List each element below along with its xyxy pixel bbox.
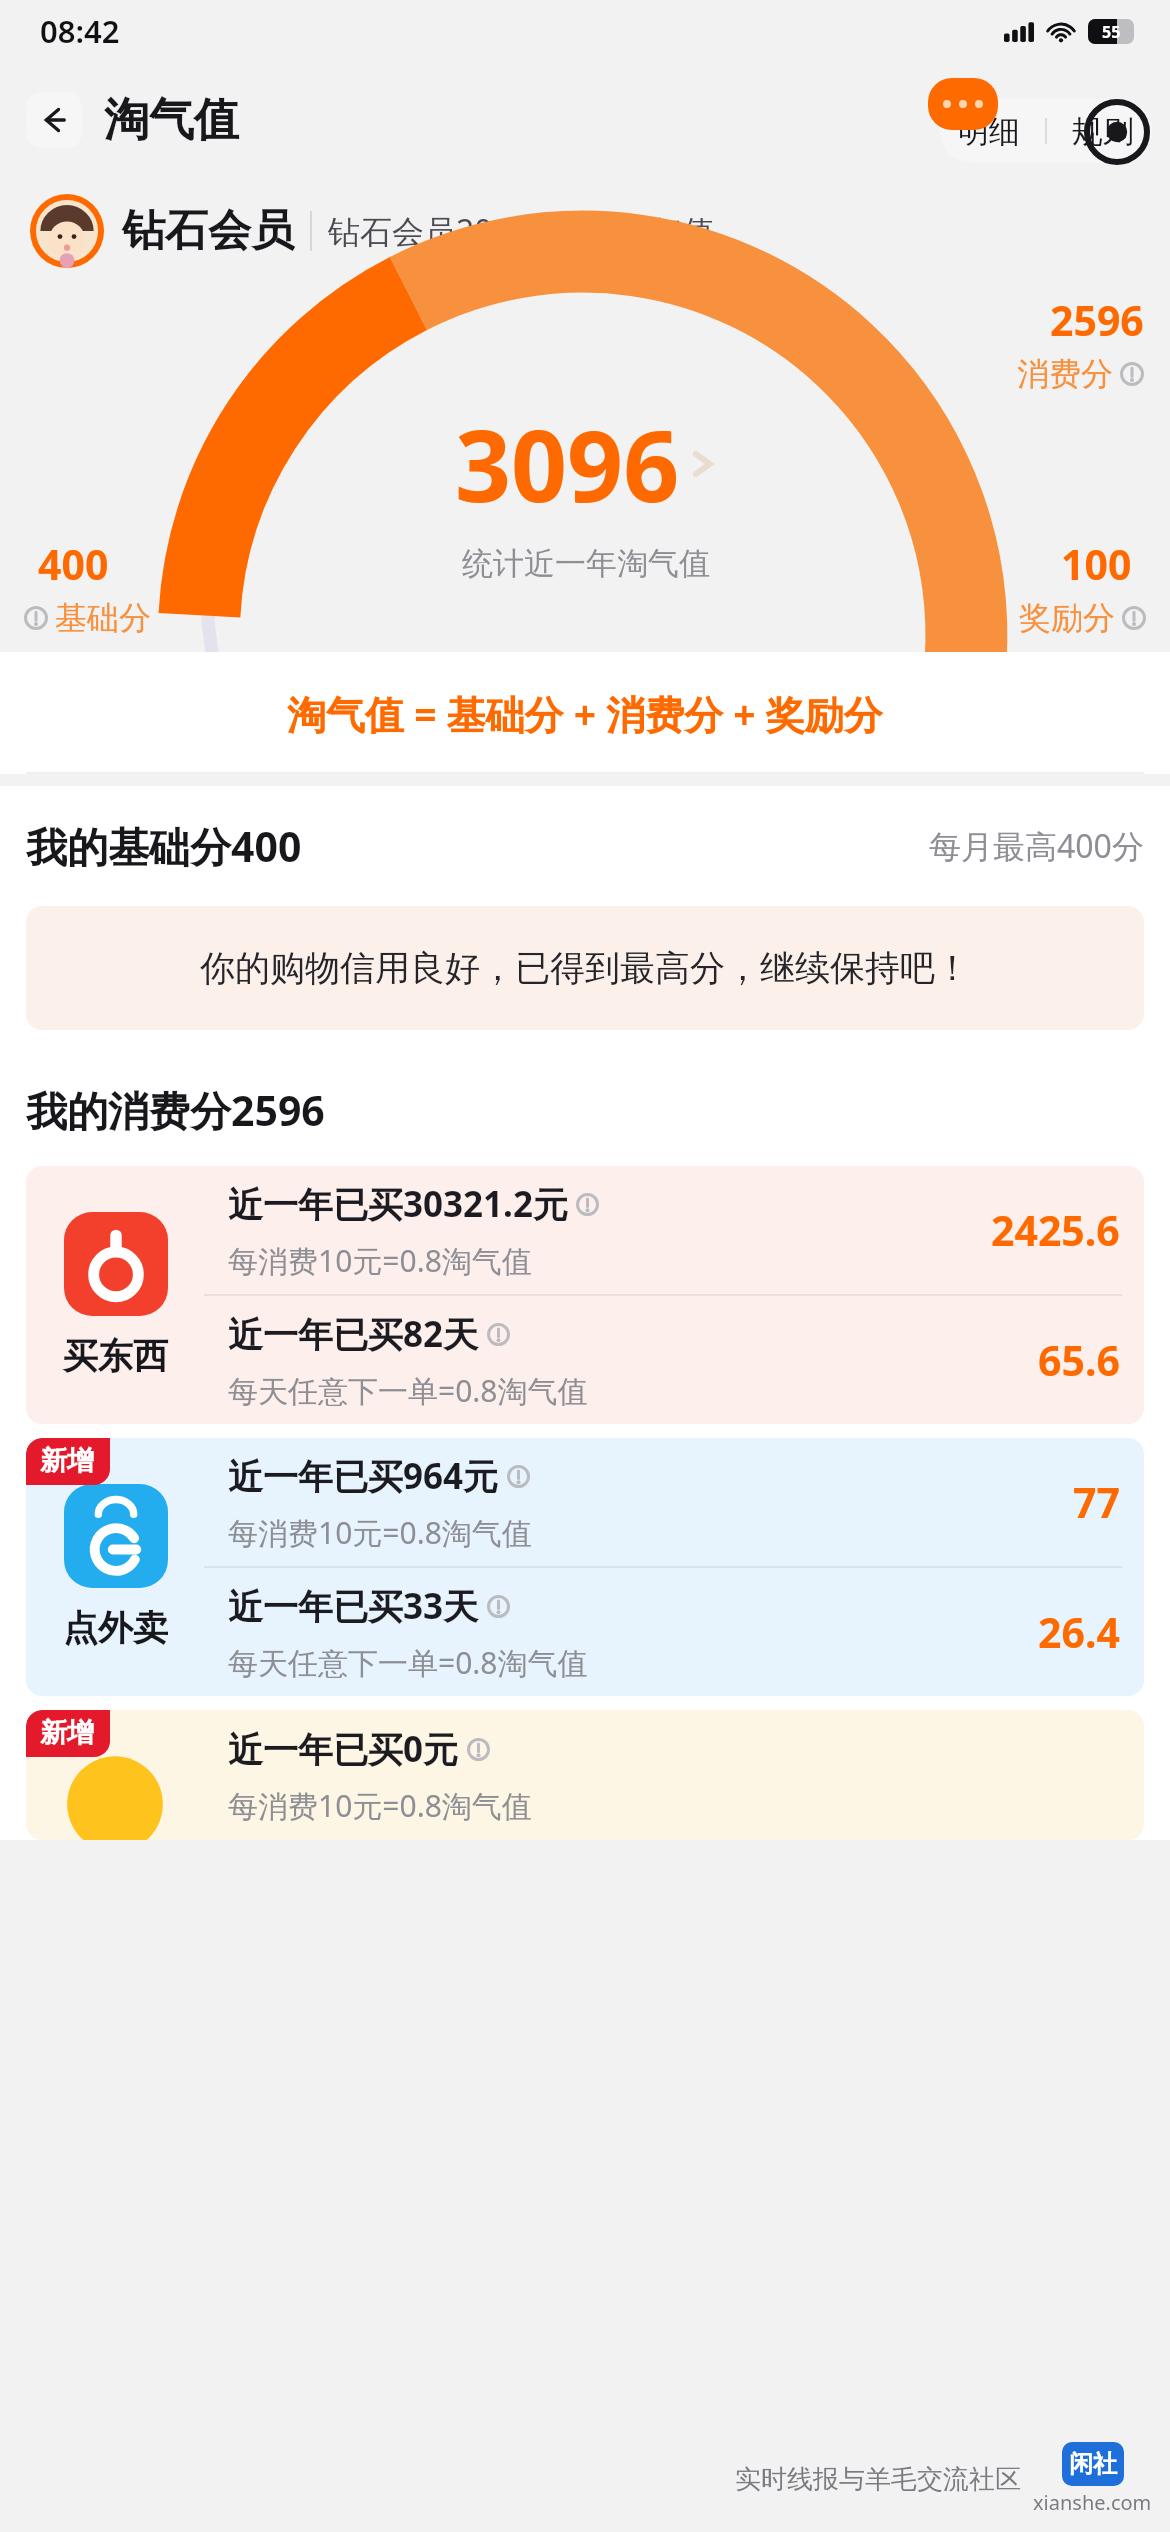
button[interactable]: Back	[26, 92, 82, 148]
staticText: 2596	[1050, 292, 1144, 348]
staticText: 每天任意下一单=0.8淘气值	[228, 1370, 588, 1411]
staticText: 新增	[40, 1444, 94, 1478]
staticText: 77	[1073, 1474, 1120, 1530]
button[interactable]: 规则	[1068, 112, 1138, 151]
staticText: 近一年已买33天	[228, 1582, 479, 1630]
button[interactable]: 买东西	[26, 1166, 1144, 1424]
staticText: 闲社	[1069, 2449, 1117, 2479]
staticText: 我的消费分2596	[26, 1082, 325, 1138]
staticText: 点外卖	[63, 1606, 168, 1650]
staticText: 消费分	[1017, 354, 1113, 394]
staticText: 近一年已买0元	[228, 1725, 459, 1773]
staticText: 统计近一年淘气值	[462, 544, 710, 583]
staticText: 淘气值	[104, 92, 239, 149]
staticText: 每消费10元=0.8淘气值	[228, 1512, 532, 1553]
staticText: 钻石会员2000–9999淘气值	[328, 209, 715, 253]
button[interactable]: Scan	[1084, 99, 1150, 165]
staticText: 2425.6	[991, 1202, 1120, 1258]
staticText: 55	[1102, 21, 1121, 43]
staticText: 淘气值 = 基础分 + 消费分 + 奖励分	[287, 687, 883, 740]
staticText: 钻石会员	[122, 204, 294, 258]
staticText: 买东西	[63, 1334, 168, 1378]
staticText: 明细	[958, 112, 1020, 151]
staticText: 你的购物信用良好，已得到最高分，继续保持吧！	[200, 946, 970, 990]
staticText: 每消费10元=0.8淘气值	[228, 1785, 532, 1826]
staticText: 400	[38, 536, 109, 592]
staticText: 65.6	[1038, 1332, 1120, 1388]
staticText: 3096	[455, 397, 680, 530]
staticText: 规则	[1072, 112, 1134, 151]
staticText: 近一年已买82天	[228, 1310, 479, 1358]
button[interactable]: 新增	[26, 1710, 1144, 1840]
button[interactable]: More options	[928, 78, 998, 130]
staticText: 新增	[40, 1716, 94, 1750]
button[interactable]: 你的购物信用良好，已得到最高分，继续保持吧！	[26, 906, 1144, 1030]
staticText: 26.4	[1038, 1604, 1120, 1660]
staticText: xianshe.com	[1033, 2489, 1152, 2516]
staticText: 08:42	[40, 10, 120, 52]
staticText: 100	[1061, 536, 1132, 592]
staticText: 奖励分	[1019, 598, 1115, 638]
staticText: 每月最高400分	[929, 824, 1144, 868]
staticText: 每天任意下一单=0.8淘气值	[228, 1642, 588, 1683]
staticText: 实时线报与羊毛交流社区	[735, 2463, 1021, 2496]
staticText: 我的基础分400	[26, 818, 302, 874]
button[interactable]: 点外卖	[26, 1438, 1144, 1696]
staticText: 近一年已买964元	[228, 1452, 499, 1500]
staticText: 每消费10元=0.8淘气值	[228, 1240, 532, 1281]
staticText: 基础分	[55, 598, 151, 638]
button[interactable]: 明细	[954, 112, 1024, 151]
staticText: 近一年已买30321.2元	[228, 1180, 568, 1228]
